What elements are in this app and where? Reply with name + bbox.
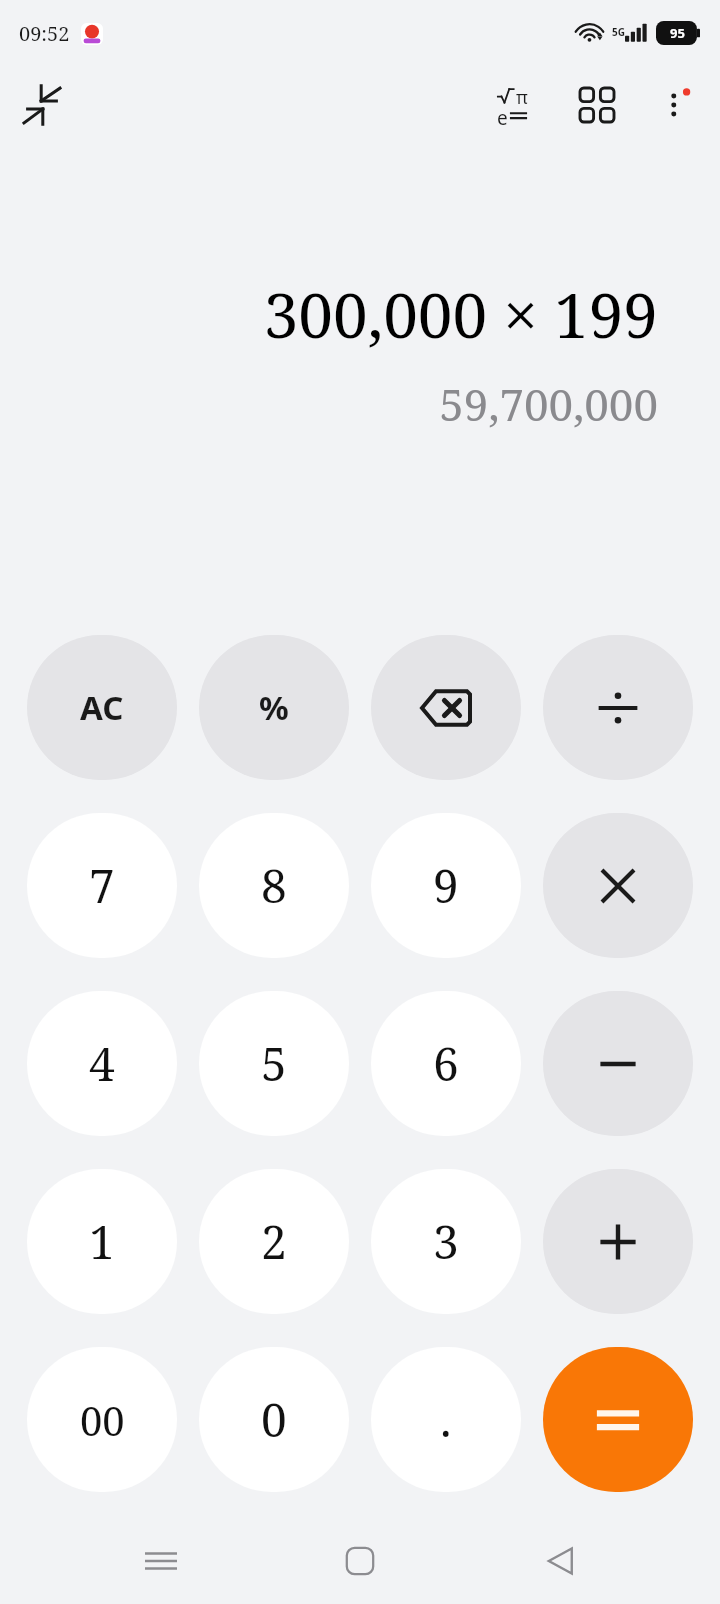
button[interactable]: %	[199, 635, 349, 780]
button[interactable]: 8	[199, 813, 349, 958]
button[interactable]: 3	[371, 1169, 521, 1314]
button[interactable]: More options	[650, 78, 704, 132]
button[interactable]: Multiply	[543, 813, 693, 958]
button[interactable]: 4	[27, 991, 177, 1136]
staticText: 2	[261, 1210, 287, 1273]
button[interactable]: Backspace	[371, 635, 521, 780]
button[interactable]: Back	[521, 1522, 599, 1600]
button[interactable]: 5	[199, 991, 349, 1136]
staticText: %	[259, 685, 289, 730]
button[interactable]: 1	[27, 1169, 177, 1314]
staticText: 6	[433, 1032, 459, 1095]
button[interactable]: 0	[199, 1347, 349, 1492]
staticText: 5	[261, 1032, 287, 1095]
staticText: 0	[261, 1388, 287, 1451]
staticText: 3	[433, 1210, 459, 1273]
button[interactable]: 00	[27, 1347, 177, 1492]
button[interactable]: 6	[371, 991, 521, 1136]
staticText: 1	[89, 1210, 115, 1273]
staticText: 95	[670, 24, 685, 42]
button[interactable]: 2	[199, 1169, 349, 1314]
button[interactable]: Unit converter	[570, 78, 624, 132]
button[interactable]: Plus	[543, 1169, 693, 1314]
button[interactable]: 7	[27, 813, 177, 958]
button[interactable]: Home	[321, 1522, 399, 1600]
staticText: e	[497, 105, 508, 125]
staticText: 8	[261, 854, 287, 917]
button[interactable]: Equals	[543, 1347, 693, 1492]
button[interactable]: Divide	[543, 635, 693, 780]
staticText: .	[440, 1388, 452, 1451]
button[interactable]: Recent apps	[122, 1522, 200, 1600]
button[interactable]: Scientific mode	[488, 76, 546, 134]
staticText: 7	[89, 854, 115, 917]
button[interactable]: Collapse	[14, 77, 70, 133]
button[interactable]: AC	[27, 635, 177, 780]
staticText: 09:52	[19, 20, 70, 47]
staticText: 59,700,000	[28, 374, 658, 434]
staticText: 5G	[612, 25, 625, 39]
staticText: 00	[80, 1393, 125, 1447]
staticText: 300,000 × 199	[28, 272, 658, 356]
staticText: π	[516, 85, 528, 105]
staticText: AC	[80, 685, 124, 730]
staticText: 9	[433, 854, 459, 917]
button[interactable]: 9	[371, 813, 521, 958]
staticText: 4	[89, 1032, 115, 1095]
button[interactable]: Minus	[543, 991, 693, 1136]
button[interactable]: .	[371, 1347, 521, 1492]
